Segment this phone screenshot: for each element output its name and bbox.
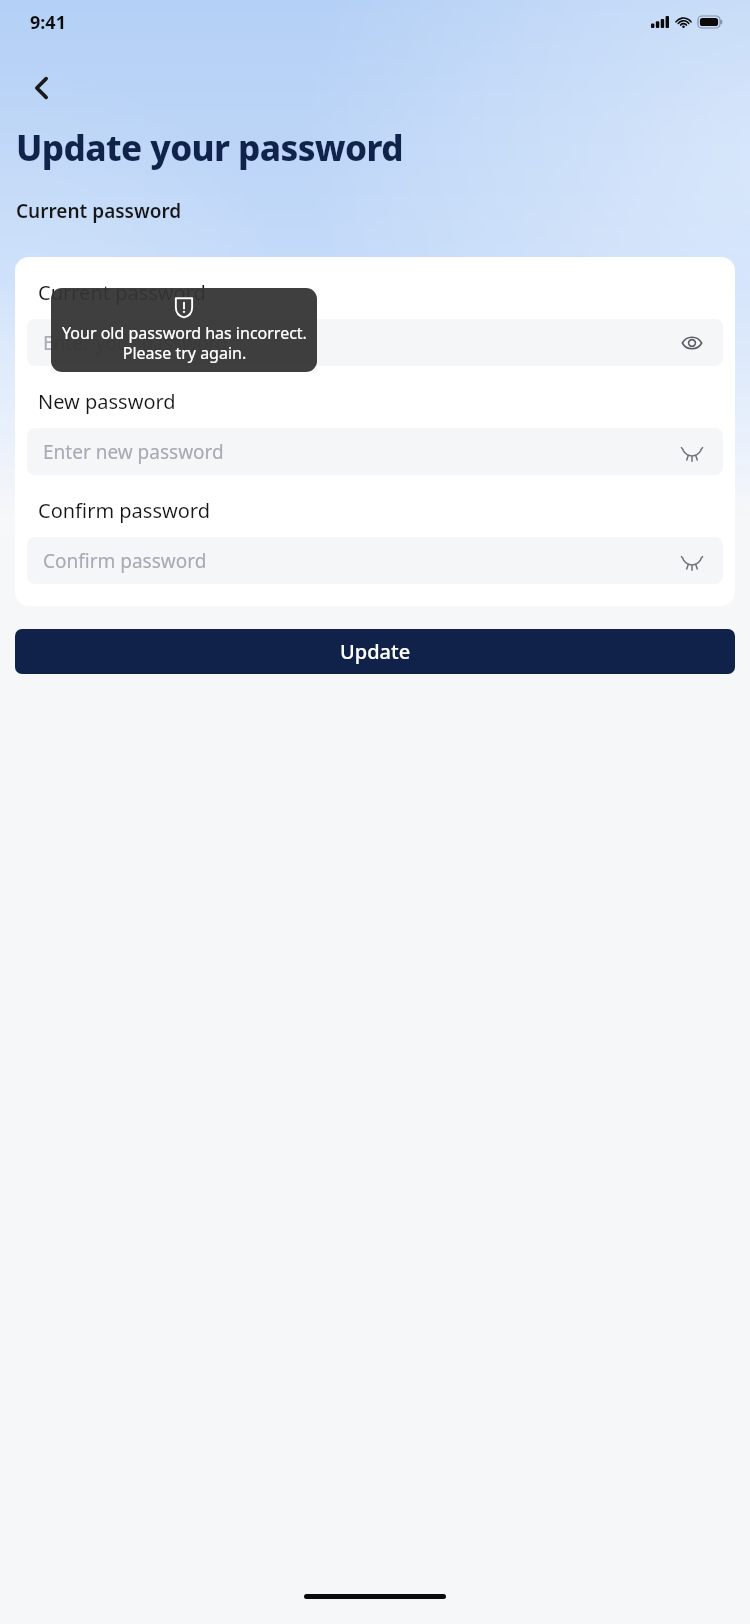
button[interactable]: Your old password has incorrect. Please … [51, 288, 317, 372]
staticText: Update your password [16, 124, 403, 172]
button[interactable]: Enter new password [27, 428, 723, 475]
staticText: Your old password has incorrect. Please … [62, 322, 307, 363]
staticText: Current password [16, 198, 182, 224]
button[interactable]: Show password [677, 546, 707, 576]
staticText: Update [340, 638, 411, 665]
staticText: Confirm password [38, 497, 210, 524]
button[interactable]: Show password [677, 437, 707, 467]
staticText: Enter your password [43, 330, 677, 356]
staticText: 9:41 [30, 10, 66, 35]
button[interactable]: Confirm password [27, 537, 723, 584]
staticText: Confirm password [43, 548, 677, 574]
staticText: Current password [38, 279, 206, 306]
button[interactable]: Enter your password [27, 319, 723, 366]
button[interactable]: Hide password [677, 328, 707, 358]
staticText: New password [38, 388, 176, 415]
button[interactable]: Back [18, 64, 66, 112]
button[interactable]: Update [15, 629, 735, 674]
staticText: Enter new password [43, 439, 677, 465]
